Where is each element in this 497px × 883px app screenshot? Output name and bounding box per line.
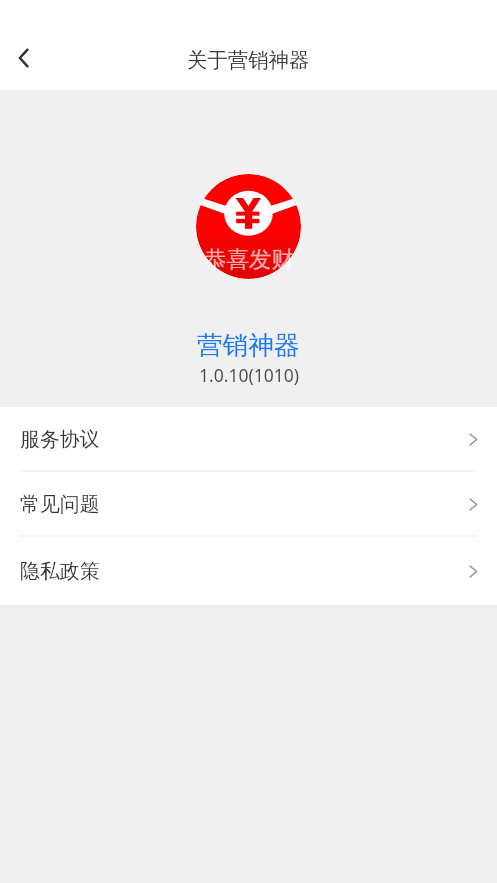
staticText: 恭喜发财: [204, 245, 294, 273]
staticText: 1.0.10(1010): [199, 363, 299, 387]
staticText: 服务协议: [20, 427, 100, 452]
button[interactable]: Back: [0, 26, 48, 90]
button[interactable]: 常见问题: [0, 472, 497, 537]
staticText: 营销神器: [197, 329, 300, 361]
staticText: 常见问题: [20, 492, 100, 517]
staticText: 隐私政策: [20, 559, 100, 584]
button[interactable]: 隐私政策: [0, 537, 497, 605]
staticText: 关于营销神器: [187, 47, 310, 73]
button[interactable]: 服务协议: [0, 407, 497, 472]
